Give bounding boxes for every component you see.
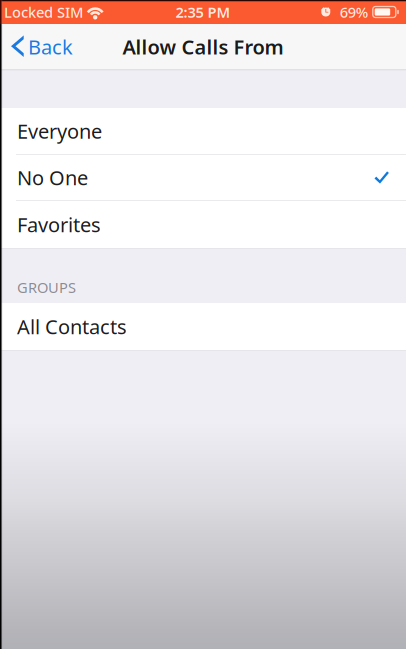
staticText: Everyone xyxy=(17,118,102,144)
staticText: All Contacts xyxy=(17,313,127,340)
button[interactable]: No One xyxy=(0,155,406,200)
staticText: GROUPS xyxy=(17,277,76,297)
staticText: 2:35 PM xyxy=(175,2,230,22)
staticText: 69% xyxy=(340,2,368,22)
staticText: Allow Calls From xyxy=(122,33,283,60)
button[interactable]: Everyone xyxy=(0,108,406,154)
button[interactable]: All Contacts xyxy=(0,303,406,350)
staticText: Back xyxy=(28,33,73,60)
staticText: Locked SIM xyxy=(4,2,83,22)
button[interactable]: Back xyxy=(0,24,83,70)
staticText: Favorites xyxy=(17,211,101,238)
button[interactable]: Favorites xyxy=(0,201,406,248)
staticText: No One xyxy=(17,164,88,191)
